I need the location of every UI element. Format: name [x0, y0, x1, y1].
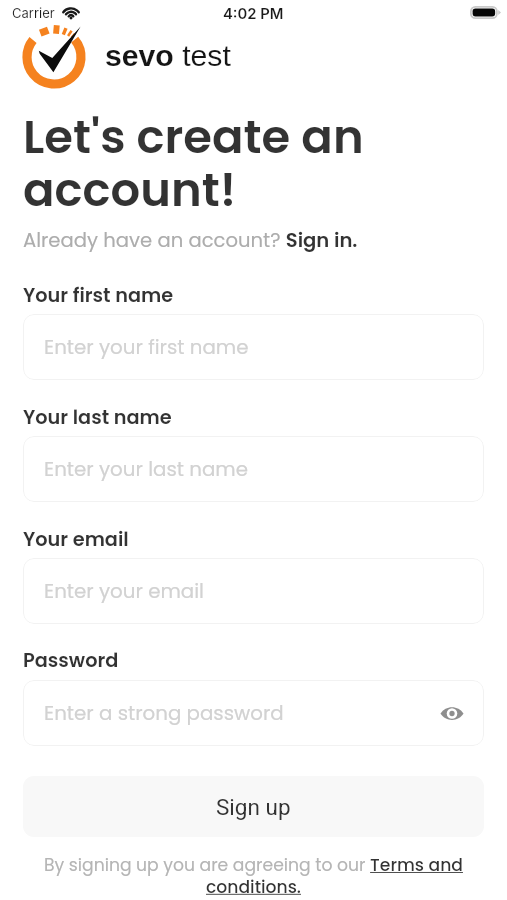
staticText: Already have an account? Sign in.: [23, 226, 358, 253]
button[interactable]: Enter your first name: [23, 314, 484, 380]
button[interactable]: Enter a strong password: [23, 680, 484, 746]
staticText: By signing up you are agreeing to our Te…: [20, 853, 487, 899]
button[interactable]: Sign up: [23, 776, 484, 837]
staticText: 4:02 PM: [223, 5, 284, 23]
button[interactable]: Show password: [436, 697, 468, 729]
staticText: Enter a strong password: [44, 699, 284, 727]
staticText: Enter your email: [44, 577, 204, 605]
staticText: Your first name: [23, 282, 174, 309]
staticText: Your email: [23, 526, 129, 553]
staticText: Your last name: [23, 404, 172, 431]
staticText: Password: [23, 647, 119, 674]
staticText: Enter your last name: [44, 455, 248, 483]
staticText: Enter your first name: [44, 333, 249, 361]
button[interactable]: Enter your email: [23, 558, 484, 624]
button[interactable]: Enter your last name: [23, 436, 484, 502]
staticText: Carrier: [12, 5, 55, 21]
staticText: Sign up: [216, 794, 291, 820]
staticText: sevo test: [105, 39, 231, 73]
staticText: Let's create an account!: [23, 104, 364, 222]
